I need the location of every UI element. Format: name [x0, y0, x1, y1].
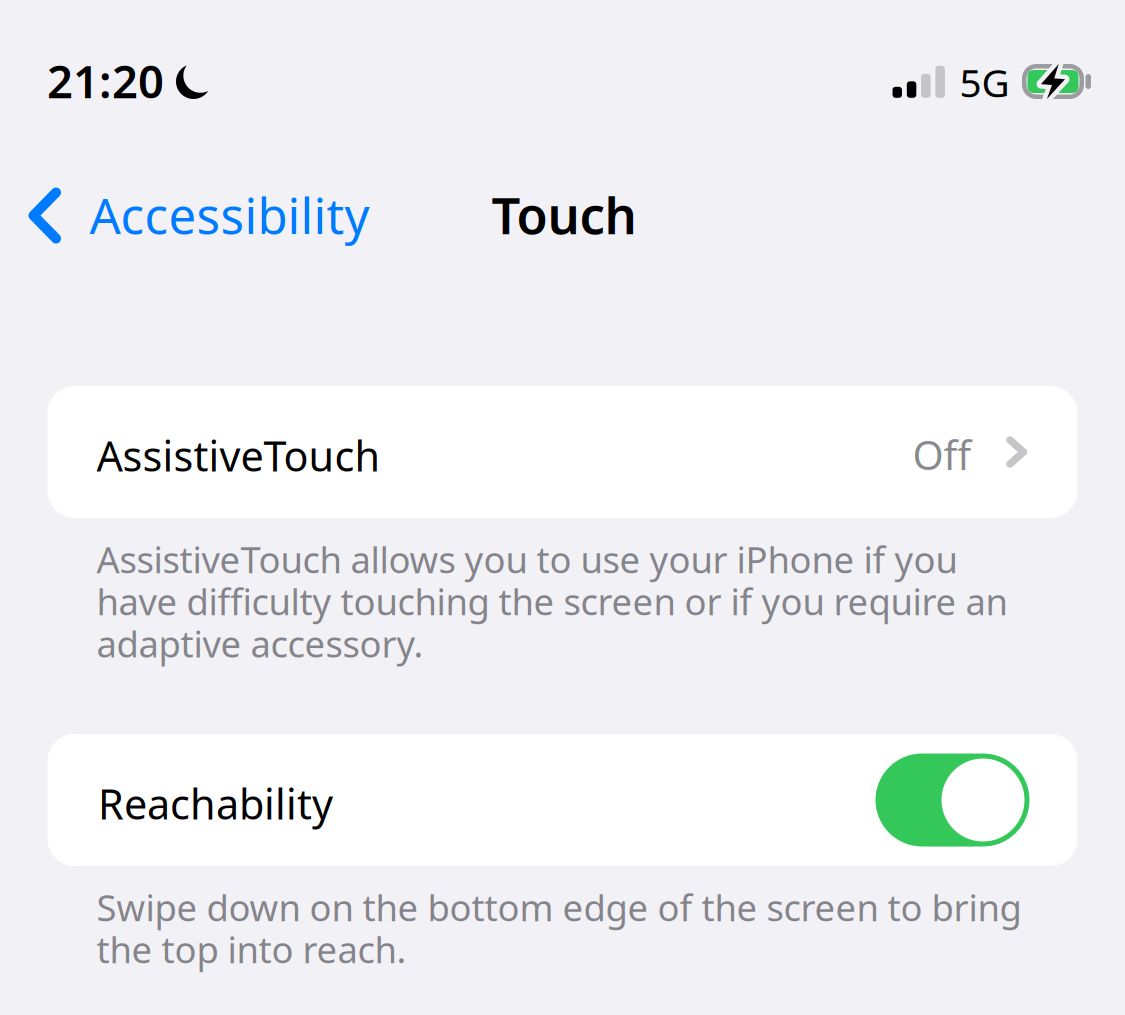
button[interactable]: Accessibility [0, 167, 352, 263]
staticText: AssistiveTouch allows you to use your iP… [96, 538, 1007, 664]
staticText: AssistiveTouch [96, 428, 380, 483]
button[interactable]: Reachability [875, 753, 1029, 846]
staticText: 5G [959, 56, 1009, 108]
staticText: Touch [491, 181, 636, 248]
staticText: Swipe down on the bottom edge of the scr… [96, 886, 1021, 970]
staticText: Reachability [98, 776, 333, 831]
button[interactable]: AssistiveTouch [47, 386, 1077, 518]
staticText: Accessibility [89, 182, 369, 248]
staticText: Off [912, 428, 971, 481]
staticText: 21:20 [47, 50, 164, 111]
